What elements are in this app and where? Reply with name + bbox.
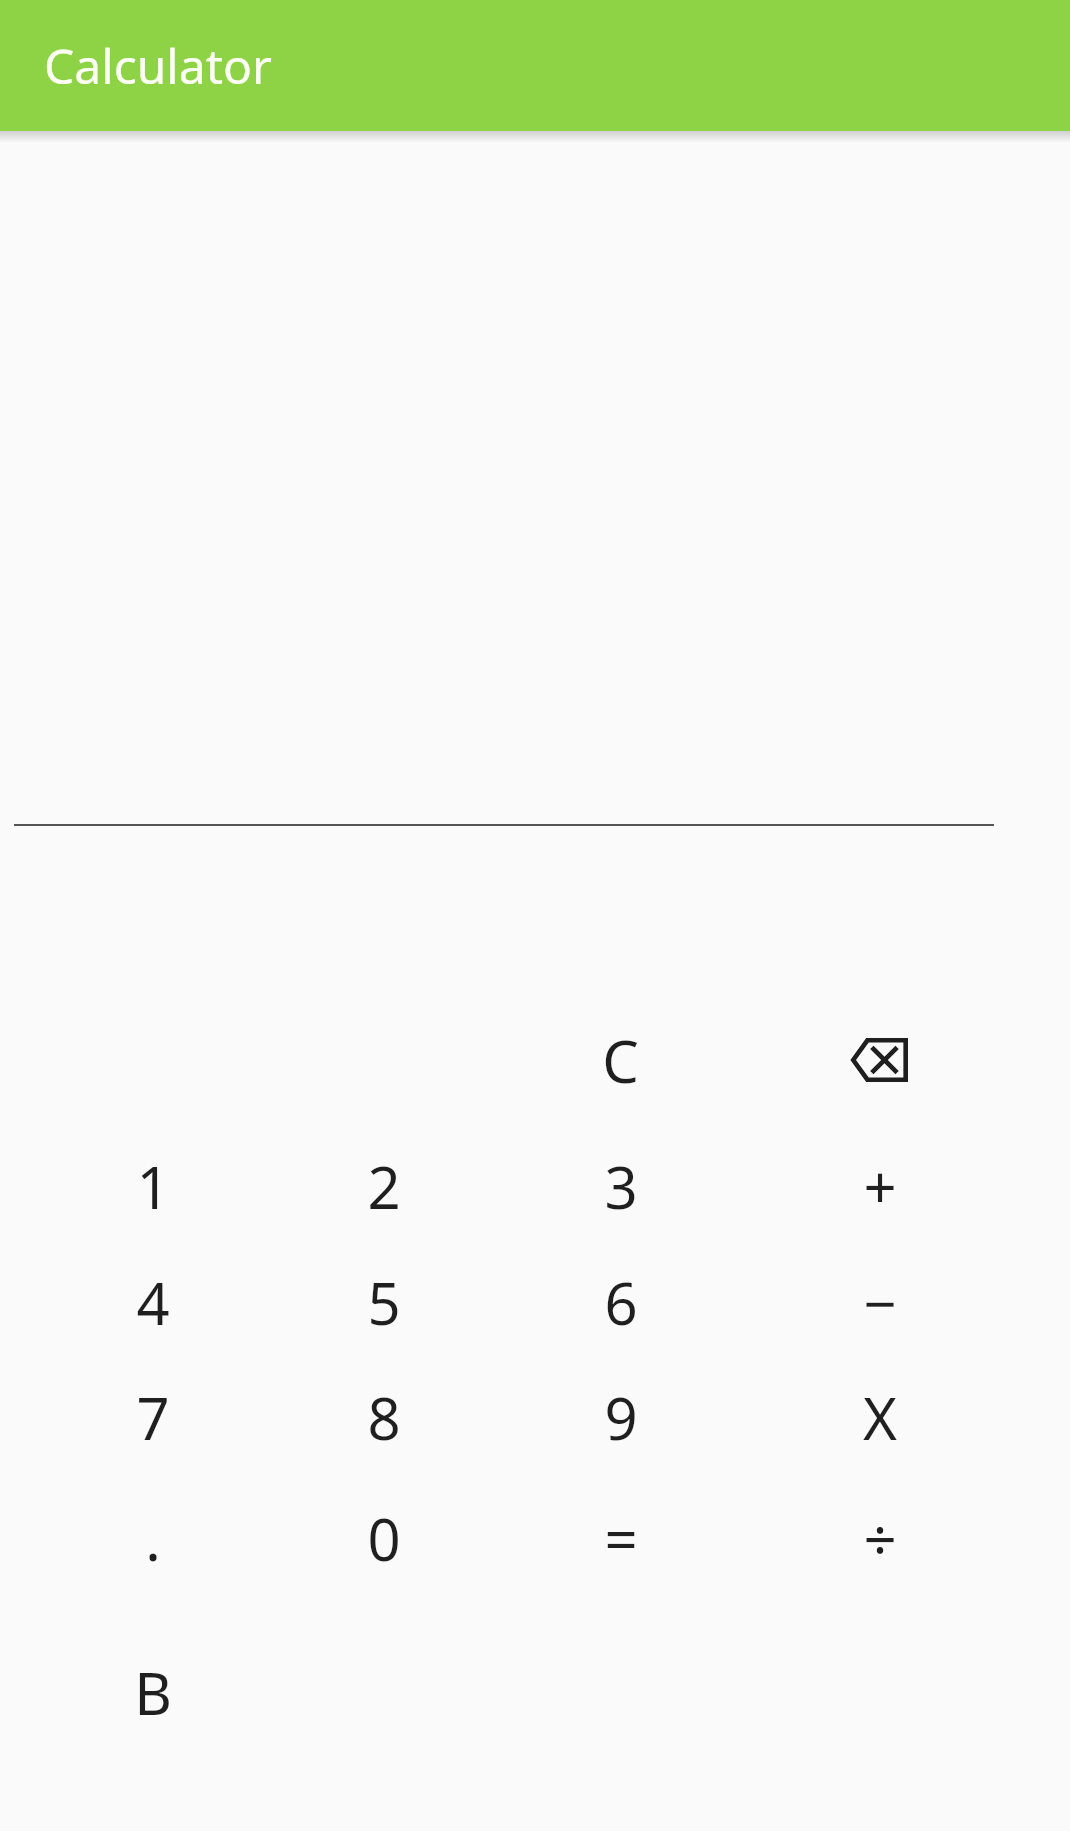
button[interactable]: C <box>518 985 723 1135</box>
staticText: − <box>863 1263 897 1342</box>
staticText: 5 <box>367 1263 401 1342</box>
staticText: 1 <box>136 1147 170 1226</box>
staticText: = <box>604 1499 638 1578</box>
staticText: 3 <box>604 1147 638 1226</box>
staticText: 9 <box>604 1378 638 1457</box>
staticText: Calculator <box>44 33 272 98</box>
staticText: X <box>863 1378 897 1457</box>
staticText: . <box>145 1499 161 1578</box>
staticText: 4 <box>136 1263 170 1342</box>
button[interactable]: B <box>50 1617 255 1767</box>
staticText: 6 <box>604 1263 638 1342</box>
staticText: 8 <box>367 1378 401 1457</box>
staticText: B <box>134 1653 172 1732</box>
button[interactable]: 4 <box>50 1227 255 1377</box>
button[interactable]: Backspace <box>784 985 974 1135</box>
button[interactable]: + <box>777 1111 982 1261</box>
staticText: ÷ <box>863 1499 897 1578</box>
staticText: C <box>602 1021 639 1100</box>
button[interactable]: 8 <box>281 1342 486 1492</box>
button[interactable]: ÷ <box>777 1463 982 1613</box>
button[interactable]: − <box>777 1227 982 1377</box>
staticText: + <box>863 1147 897 1226</box>
button[interactable]: . <box>50 1463 255 1613</box>
button[interactable]: X <box>777 1342 982 1492</box>
button[interactable]: 9 <box>518 1342 723 1492</box>
button[interactable]: = <box>518 1463 723 1613</box>
button[interactable]: 3 <box>518 1111 723 1261</box>
button[interactable]: 5 <box>281 1227 486 1377</box>
button[interactable]: 1 <box>50 1111 255 1261</box>
staticText: 7 <box>136 1378 170 1457</box>
staticText: 2 <box>367 1147 401 1226</box>
button[interactable]: 6 <box>518 1227 723 1377</box>
button[interactable]: 7 <box>50 1342 255 1492</box>
staticText: 0 <box>367 1499 401 1578</box>
button[interactable]: 2 <box>281 1111 486 1261</box>
button[interactable]: 0 <box>281 1463 486 1613</box>
